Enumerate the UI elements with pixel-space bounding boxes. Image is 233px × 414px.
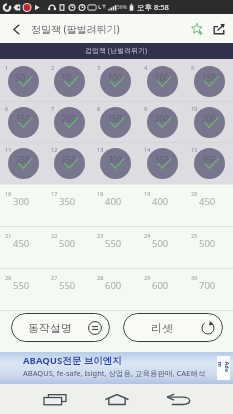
button[interactable]: 27: [46, 269, 92, 310]
button[interactable]: 28: [92, 269, 139, 310]
staticText: 리셋: [151, 321, 173, 335]
button[interactable]: 2: [46, 61, 92, 102]
staticText: 19: [144, 190, 151, 197]
button[interactable]: 10: [186, 102, 233, 143]
staticText: 17: [51, 190, 58, 197]
staticText: 550: [13, 279, 30, 292]
button[interactable]: 14: [139, 143, 186, 184]
button[interactable]: Recent apps: [35, 384, 74, 414]
staticText: 300: [13, 195, 30, 208]
button[interactable]: 19: [139, 185, 186, 226]
staticText: 4: [144, 64, 148, 71]
staticText: 600: [152, 279, 169, 292]
button[interactable]: 12: [46, 143, 92, 184]
button[interactable]: 11: [0, 143, 46, 184]
staticText: 250: [16, 154, 30, 165]
button[interactable]: Share: [208, 18, 230, 40]
button[interactable]: 15: [186, 143, 233, 184]
button[interactable]: 16: [0, 185, 46, 226]
staticText: ABAQUS전문 브이엔지: [23, 354, 122, 367]
button[interactable]: Home: [97, 384, 136, 414]
staticText: 11: [5, 146, 12, 153]
staticText: 20: [191, 190, 198, 197]
staticText: 50: [62, 72, 72, 83]
staticText: 26: [5, 274, 12, 281]
button[interactable]: 리셋: [123, 313, 223, 342]
staticText: 7: [51, 105, 55, 112]
staticText: 18: [97, 190, 104, 197]
staticText: 12: [51, 146, 58, 153]
staticText: 200: [62, 113, 76, 124]
button[interactable]: 7: [46, 102, 92, 143]
button[interactable]: 17: [46, 185, 92, 226]
staticText: 200: [202, 113, 216, 124]
button[interactable]: 30: [186, 269, 233, 310]
staticText: 150: [202, 72, 216, 83]
button[interactable]: Back: [159, 384, 198, 414]
staticText: 550: [105, 237, 122, 250]
button[interactable]: Favorite: [186, 18, 208, 40]
staticText: 200: [155, 113, 169, 124]
staticText: 1: [5, 64, 9, 71]
staticText: 400: [152, 195, 169, 208]
button[interactable]: 24: [139, 227, 186, 268]
staticText: 14: [144, 146, 151, 153]
staticText: 50: [16, 72, 26, 83]
staticText: 150: [108, 113, 122, 124]
staticText: 100: [155, 72, 169, 83]
button[interactable]: Back: [4, 17, 28, 41]
staticText: 10: [191, 105, 198, 112]
button[interactable]: 18: [92, 185, 139, 226]
button[interactable]: 8: [92, 102, 139, 143]
button[interactable]: 9: [139, 102, 186, 143]
staticText: 24: [144, 232, 151, 239]
staticText: 500: [59, 237, 76, 250]
staticText: 오후 8:58: [137, 2, 169, 12]
button[interactable]: 22: [46, 227, 92, 268]
staticText: 3: [97, 64, 101, 71]
staticText: 2: [51, 64, 55, 71]
staticText: 6: [5, 105, 9, 112]
staticText: 5: [191, 64, 195, 71]
button[interactable]: 20: [186, 185, 233, 226]
staticText: 600: [105, 279, 122, 292]
button[interactable]: 3: [92, 61, 139, 102]
staticText: 8: [97, 105, 101, 112]
button[interactable]: 26: [0, 269, 46, 310]
staticText: ABAQUS, fe-safe, Isight, 상업용, 교육용판매, CAE…: [23, 368, 206, 378]
staticText: 500: [199, 237, 216, 250]
staticText: 정밀잭 (팔벌려뛰기): [31, 22, 120, 36]
staticText: 350: [59, 195, 76, 208]
button[interactable]: 5: [186, 61, 233, 102]
staticText: 동작설명: [28, 321, 72, 335]
staticText: 400: [105, 195, 122, 208]
staticText: 450: [13, 237, 30, 250]
staticText: 250: [62, 154, 76, 165]
staticText: 22: [51, 232, 58, 239]
staticText: 350: [202, 154, 216, 165]
staticText: 100: [108, 72, 122, 83]
staticText: 27: [51, 274, 58, 281]
button[interactable]: 6: [0, 102, 46, 143]
staticText: 350: [155, 154, 169, 165]
staticText: 30: [191, 274, 198, 281]
button[interactable]: 4: [139, 61, 186, 102]
staticText: 15: [191, 146, 198, 153]
button[interactable]: 25: [186, 227, 233, 268]
staticText: 700: [199, 279, 216, 292]
staticText: 9: [144, 105, 148, 112]
staticText: 13: [97, 146, 104, 153]
staticText: 550: [59, 279, 76, 292]
staticText: 23: [97, 232, 104, 239]
button[interactable]: 23: [92, 227, 139, 268]
staticText: 검엉책 (난벌려뛰기): [85, 46, 148, 56]
button[interactable]: 29: [139, 269, 186, 310]
staticText: 300: [108, 154, 122, 165]
staticText: 25: [191, 232, 198, 239]
staticText: 150: [16, 113, 30, 124]
button[interactable]: 1: [0, 61, 46, 102]
button[interactable]: ABAQUS전문 브이엔지: [0, 352, 233, 384]
button[interactable]: 21: [0, 227, 46, 268]
button[interactable]: 13: [92, 143, 139, 184]
button[interactable]: 동작설명: [11, 313, 110, 342]
